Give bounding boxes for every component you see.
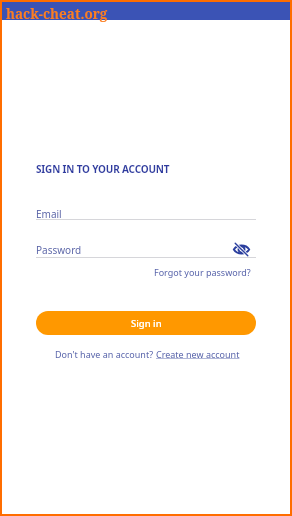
staticText: hack-cheat.org bbox=[6, 5, 108, 23]
staticText: Password bbox=[36, 243, 82, 257]
staticText: Don't have an account? bbox=[55, 348, 156, 360]
button[interactable]: Email bbox=[36, 207, 256, 225]
button[interactable]: Password bbox=[36, 243, 256, 265]
staticText: SIGN IN TO YOUR ACCOUNT bbox=[36, 162, 170, 176]
staticText: Email bbox=[36, 207, 62, 221]
button[interactable]: Sign in bbox=[36, 311, 256, 335]
staticText: Sign in bbox=[131, 317, 162, 330]
button[interactable]: Show password bbox=[232, 240, 250, 258]
button[interactable]: Create new account bbox=[156, 348, 242, 360]
button[interactable]: Forgot your password? bbox=[154, 266, 251, 278]
